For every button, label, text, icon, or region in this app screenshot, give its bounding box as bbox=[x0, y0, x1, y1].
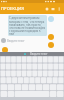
staticText: С двухсантиметровым зазором с тем, что т… bbox=[9, 16, 46, 35]
staticText: ПРОЕКЦИЯ bbox=[1, 6, 24, 12]
button[interactable]: More options bbox=[56, 6, 62, 12]
button[interactable]: Sender avatar bbox=[2, 47, 8, 53]
staticText: Введите текст bbox=[7, 39, 25, 43]
button[interactable]: Call bbox=[44, 6, 50, 12]
button[interactable]: Video call bbox=[50, 6, 56, 12]
button[interactable]: Contact avatar bbox=[48, 16, 54, 22]
button[interactable]: Your avatar bbox=[48, 42, 54, 48]
button[interactable]: Your avatar bbox=[48, 34, 54, 40]
button[interactable]: С двухсантиметровым зазором с тем, что т… bbox=[8, 15, 47, 36]
staticText: Введите текст bbox=[30, 52, 48, 56]
